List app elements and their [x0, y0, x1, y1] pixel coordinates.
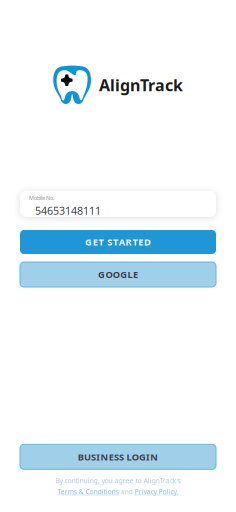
staticText: BUSINESS LOGIN [78, 451, 158, 463]
staticText: GOOGLE [98, 268, 138, 281]
staticText: Mobile No. [29, 194, 54, 201]
button[interactable]: Privacy Policy. [134, 487, 178, 496]
button[interactable]: GOOGLE [20, 262, 216, 287]
button[interactable]: BUSINESS LOGIN [20, 444, 216, 469]
staticText: and [120, 487, 132, 496]
staticText: Terms & Conditions [57, 487, 118, 496]
staticText: AlignTrack [99, 74, 183, 96]
staticText: 54653148111 [35, 203, 101, 218]
button[interactable]: GET STARTED [20, 230, 216, 254]
button[interactable]: Terms & Conditions [57, 487, 118, 496]
staticText: By continuing, you agree to AlignTrack's [55, 476, 180, 485]
staticText: GET STARTED [85, 236, 151, 248]
staticText: Privacy Policy. [134, 487, 178, 496]
